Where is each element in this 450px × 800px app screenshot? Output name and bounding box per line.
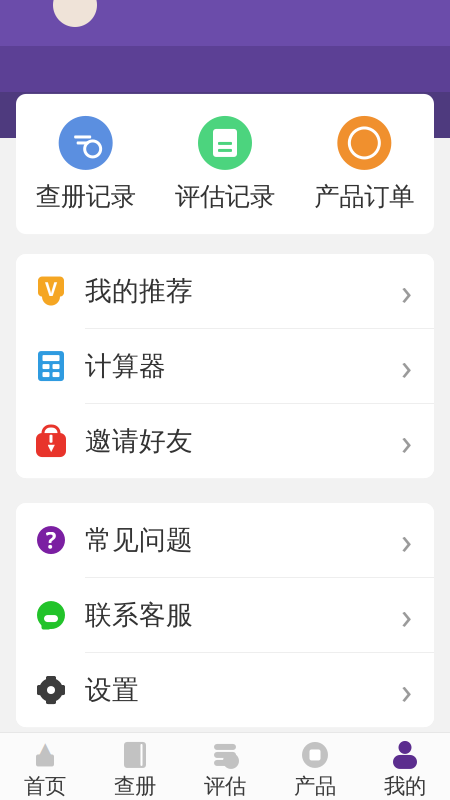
button[interactable]: 评估	[180, 741, 270, 799]
button[interactable]: 查册记录	[16, 110, 155, 218]
staticText: V	[45, 277, 57, 301]
button[interactable]: 评估记录	[155, 110, 295, 218]
staticText: 查册	[114, 773, 156, 799]
button[interactable]: 联系客服	[16, 578, 434, 653]
staticText: 常见问题	[85, 524, 193, 556]
button[interactable]: 设置	[16, 653, 434, 727]
button[interactable]: ¥	[295, 110, 434, 218]
staticText: 首页	[24, 773, 66, 799]
staticText: 查册记录	[36, 181, 136, 212]
button[interactable]: 产品	[270, 741, 360, 799]
staticText: 评估记录	[175, 181, 275, 212]
staticText: 联系客服	[85, 599, 193, 631]
staticText: ›	[401, 417, 412, 465]
staticText: 计算器	[85, 350, 166, 382]
staticText: 邀请好友	[85, 425, 193, 457]
staticText: ›	[401, 516, 412, 564]
staticText: 我的推荐	[85, 275, 193, 307]
staticText: ?	[45, 525, 56, 555]
staticText: 设置	[85, 674, 139, 706]
staticText: ›	[401, 591, 412, 639]
staticText: 我的	[384, 773, 426, 799]
staticText: ›	[401, 342, 412, 390]
button[interactable]: V	[16, 254, 434, 329]
staticText: ¥	[357, 126, 371, 160]
staticText: ›	[401, 666, 412, 714]
button[interactable]: ▾	[16, 404, 434, 478]
staticText: ▾	[47, 439, 54, 455]
button[interactable]: ?	[16, 503, 434, 578]
staticText: 产品	[294, 773, 336, 799]
button[interactable]: 查册	[90, 741, 180, 799]
staticText: 产品订单	[314, 181, 414, 212]
button[interactable]: 计算器	[16, 329, 434, 404]
staticText: ›	[401, 267, 412, 315]
button[interactable]: 我的	[360, 741, 450, 799]
staticText: 评估	[204, 773, 246, 799]
button[interactable]: ▲	[0, 741, 90, 799]
staticText: ▲	[36, 737, 53, 763]
